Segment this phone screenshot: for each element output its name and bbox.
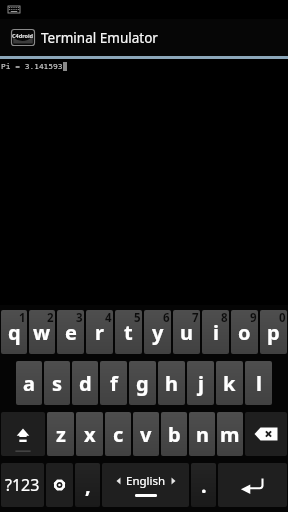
- staticText: k: [223, 370, 236, 397]
- staticText: h: [165, 370, 178, 397]
- button[interactable]: l: [245, 361, 272, 405]
- button[interactable]: v: [133, 412, 159, 456]
- button[interactable]: z: [47, 412, 74, 456]
- button[interactable]: Delete: [245, 412, 287, 456]
- staticText: n: [196, 421, 209, 448]
- button[interactable]: q: [1, 310, 27, 354]
- staticText: u: [180, 319, 193, 346]
- button[interactable]: s: [44, 361, 70, 405]
- staticText: j: [198, 370, 204, 397]
- staticText: p: [267, 319, 280, 346]
- staticText: w: [33, 319, 51, 346]
- button[interactable]: ,: [75, 463, 100, 507]
- staticText: d: [79, 370, 92, 397]
- staticText: v: [140, 421, 152, 448]
- button[interactable]: m: [217, 412, 243, 456]
- staticText: 7: [192, 310, 199, 326]
- staticText: 6: [163, 310, 170, 326]
- staticText: o: [238, 319, 251, 346]
- button[interactable]: b: [161, 412, 187, 456]
- button[interactable]: h: [158, 361, 185, 405]
- button[interactable]: p: [260, 310, 287, 354]
- staticText: s: [52, 370, 63, 397]
- button[interactable]: c: [105, 412, 131, 456]
- button[interactable]: g: [129, 361, 156, 405]
- staticText: C4droid: [12, 32, 34, 39]
- staticText: 4: [105, 310, 112, 326]
- button[interactable]: w: [29, 310, 55, 354]
- button[interactable]: English: [102, 463, 189, 507]
- button[interactable]: n: [189, 412, 215, 456]
- staticText: 2: [47, 310, 54, 326]
- staticText: c: [113, 421, 124, 448]
- staticText: q: [8, 319, 21, 346]
- button[interactable]: o: [231, 310, 258, 354]
- staticText: 0: [279, 310, 286, 326]
- staticText: 1: [19, 310, 26, 326]
- button[interactable]: k: [216, 361, 243, 405]
- staticText: b: [168, 421, 181, 448]
- staticText: i: [213, 319, 219, 346]
- button[interactable]: j: [187, 361, 214, 405]
- staticText: 9: [250, 310, 257, 326]
- button[interactable]: Shift: [1, 412, 45, 456]
- staticText: 3: [76, 310, 83, 326]
- button[interactable]: t: [115, 310, 142, 354]
- button[interactable]: Settings: [46, 463, 73, 507]
- button[interactable]: .: [191, 463, 216, 507]
- other: Keyboard active: [8, 6, 20, 13]
- staticText: z: [56, 421, 66, 448]
- staticText: m: [220, 421, 240, 448]
- button[interactable]: y: [144, 310, 171, 354]
- button[interactable]: f: [100, 361, 127, 405]
- staticText: x: [84, 421, 96, 448]
- staticText: e: [65, 319, 77, 346]
- staticText: y: [152, 319, 164, 346]
- button[interactable]: i: [202, 310, 229, 354]
- staticText: 8: [221, 310, 228, 326]
- staticText: a: [23, 370, 35, 397]
- staticText: .: [201, 472, 207, 499]
- staticText: r: [95, 319, 104, 346]
- button[interactable]: ?123: [1, 463, 44, 507]
- staticText: l: [256, 370, 262, 397]
- staticText: English: [126, 473, 166, 489]
- staticText: g: [136, 370, 149, 397]
- staticText: 5: [134, 310, 141, 326]
- staticText: t: [124, 319, 133, 346]
- button[interactable]: Enter: [218, 463, 287, 507]
- staticText: f: [110, 370, 118, 397]
- button[interactable]: r: [86, 310, 113, 354]
- button[interactable]: d: [72, 361, 98, 405]
- button[interactable]: u: [173, 310, 200, 354]
- staticText: ,: [85, 472, 91, 499]
- button[interactable]: x: [76, 412, 103, 456]
- staticText: Pi = 3.141593: [1, 61, 63, 72]
- button[interactable]: e: [57, 310, 84, 354]
- button[interactable]: a: [16, 361, 42, 405]
- staticText: Terminal Emulator: [41, 29, 158, 47]
- staticText: ?123: [5, 474, 40, 496]
